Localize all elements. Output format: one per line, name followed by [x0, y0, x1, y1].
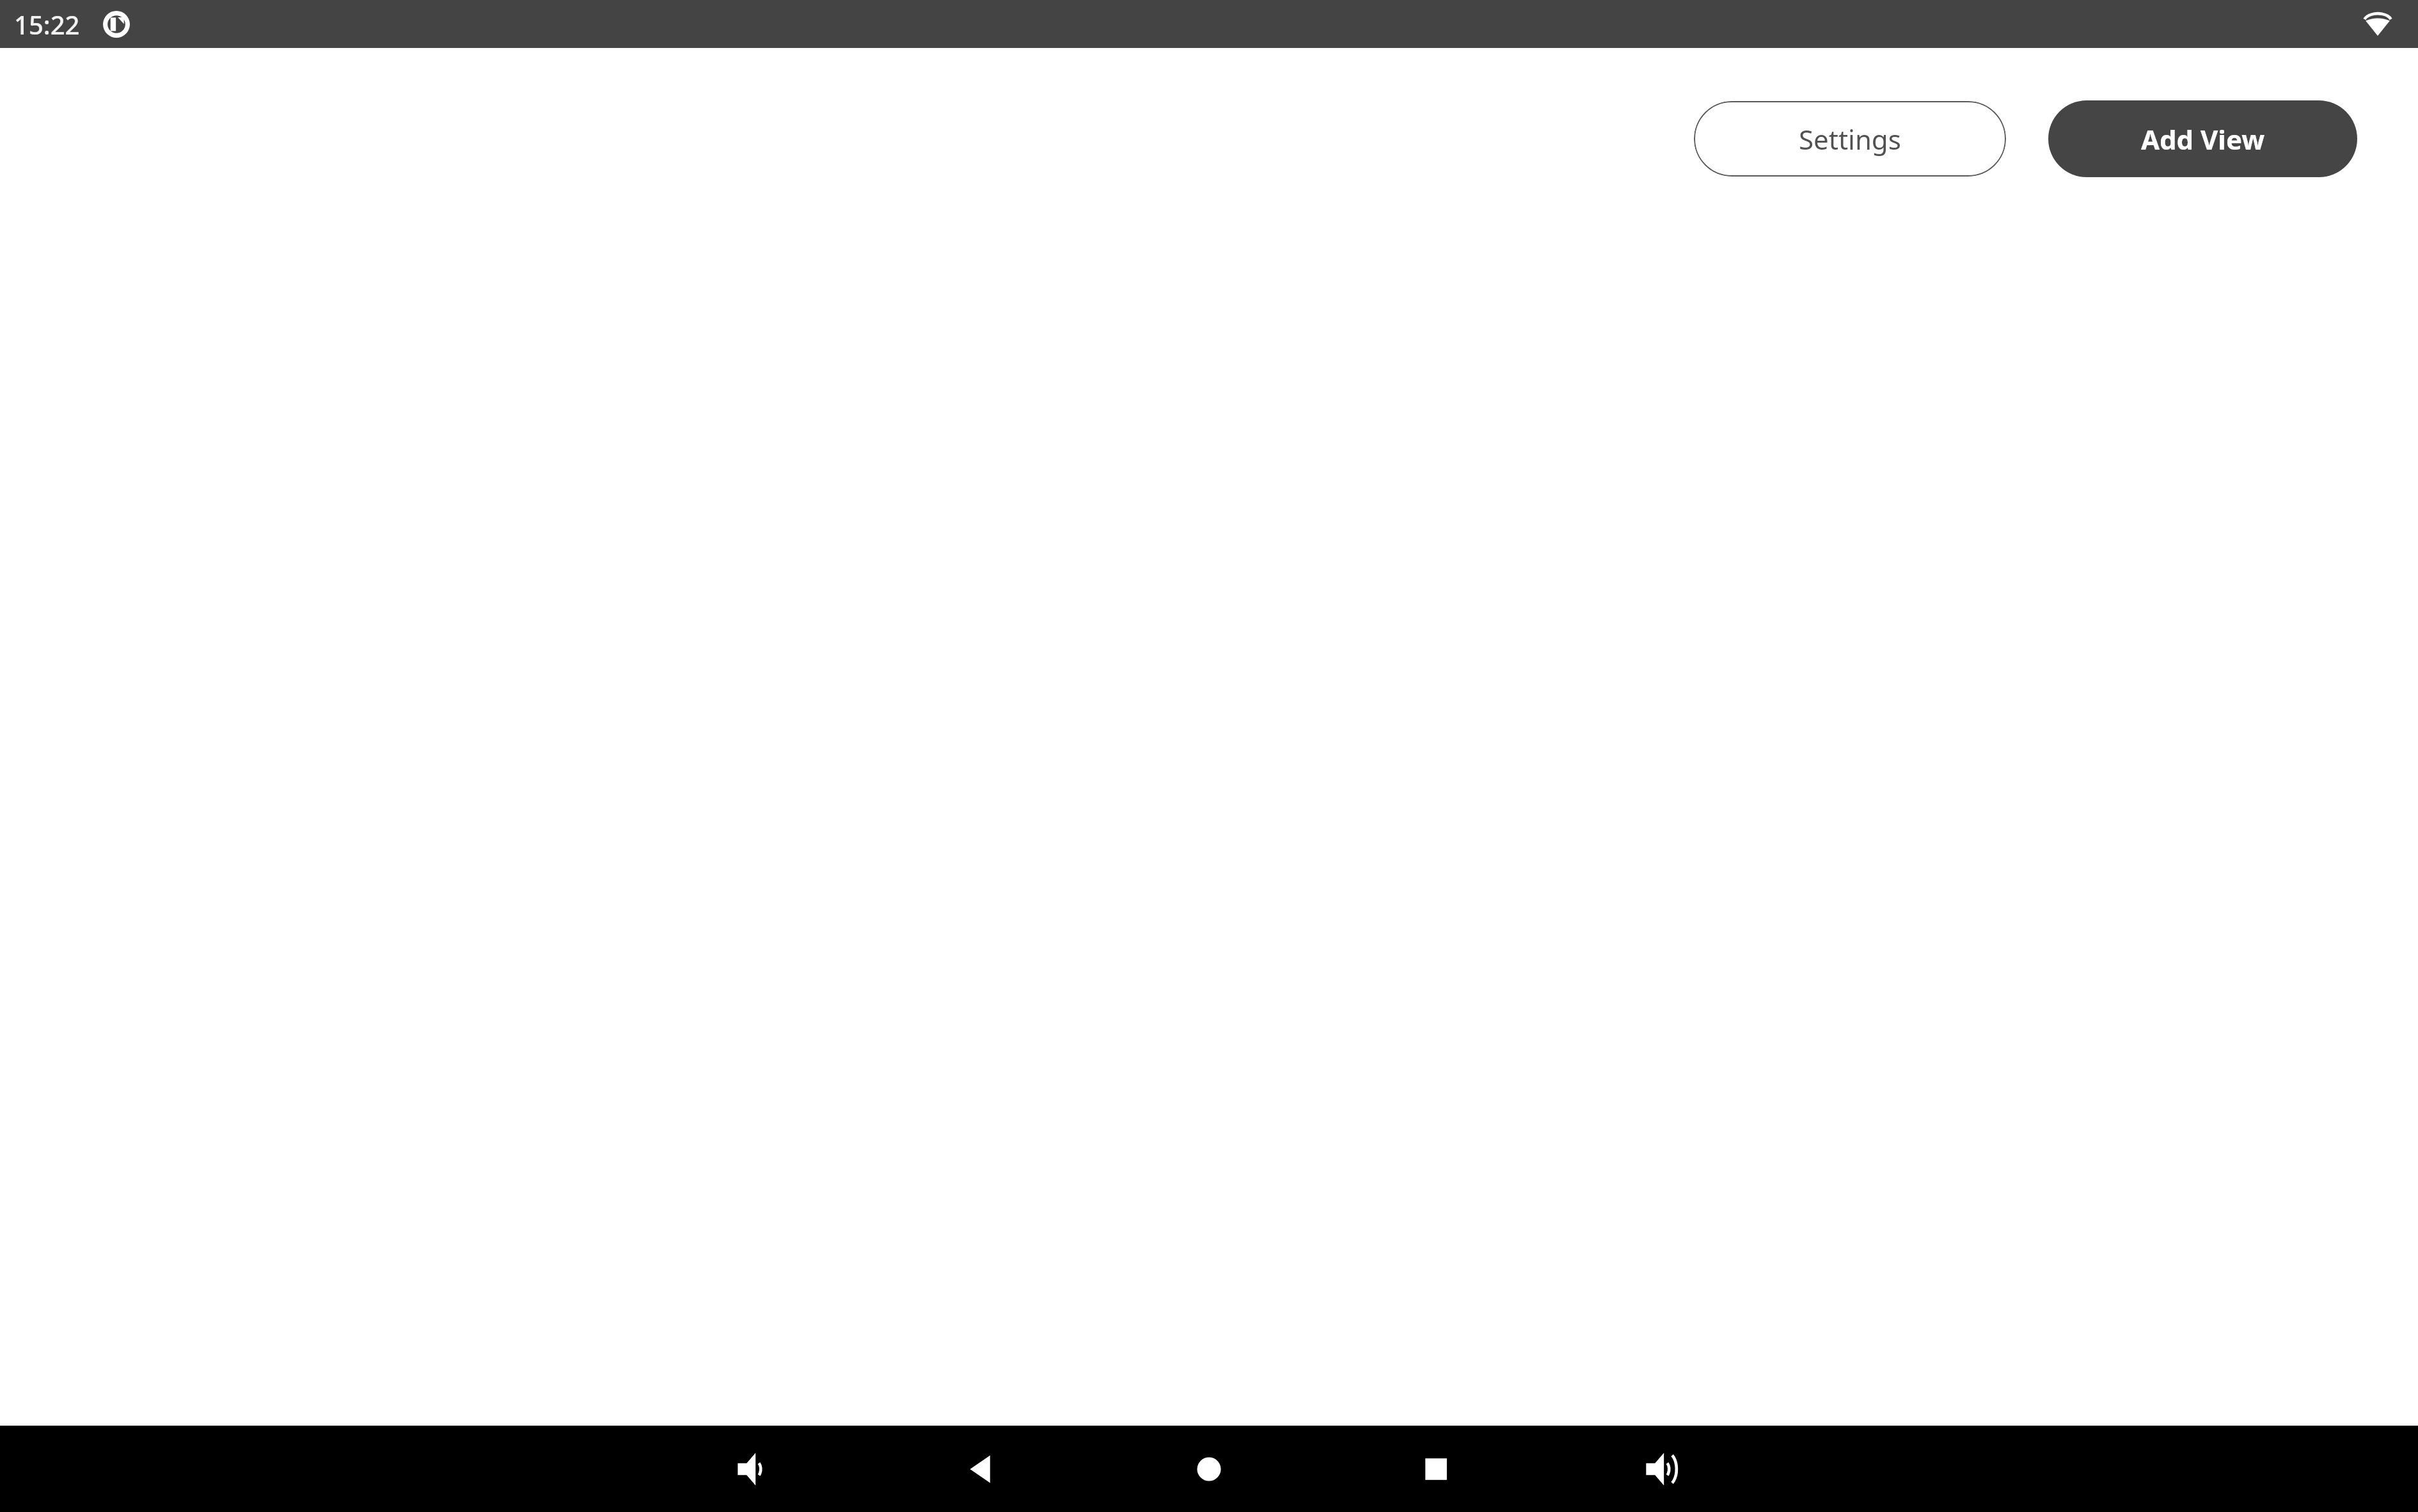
- button[interactable]: Volume up: [1628, 1434, 1698, 1504]
- staticText: Settings: [1799, 121, 1901, 157]
- button[interactable]: Add View: [2048, 100, 2357, 177]
- button[interactable]: Recent apps: [1401, 1434, 1471, 1504]
- other: Wi-Fi: [2363, 12, 2392, 37]
- button[interactable]: Back: [947, 1434, 1017, 1504]
- button[interactable]: Volume down: [720, 1434, 790, 1504]
- button[interactable]: Settings: [1694, 101, 2006, 177]
- staticText: 15:22: [14, 7, 80, 42]
- button[interactable]: Home: [1174, 1434, 1244, 1504]
- staticText: Add View: [2141, 121, 2265, 157]
